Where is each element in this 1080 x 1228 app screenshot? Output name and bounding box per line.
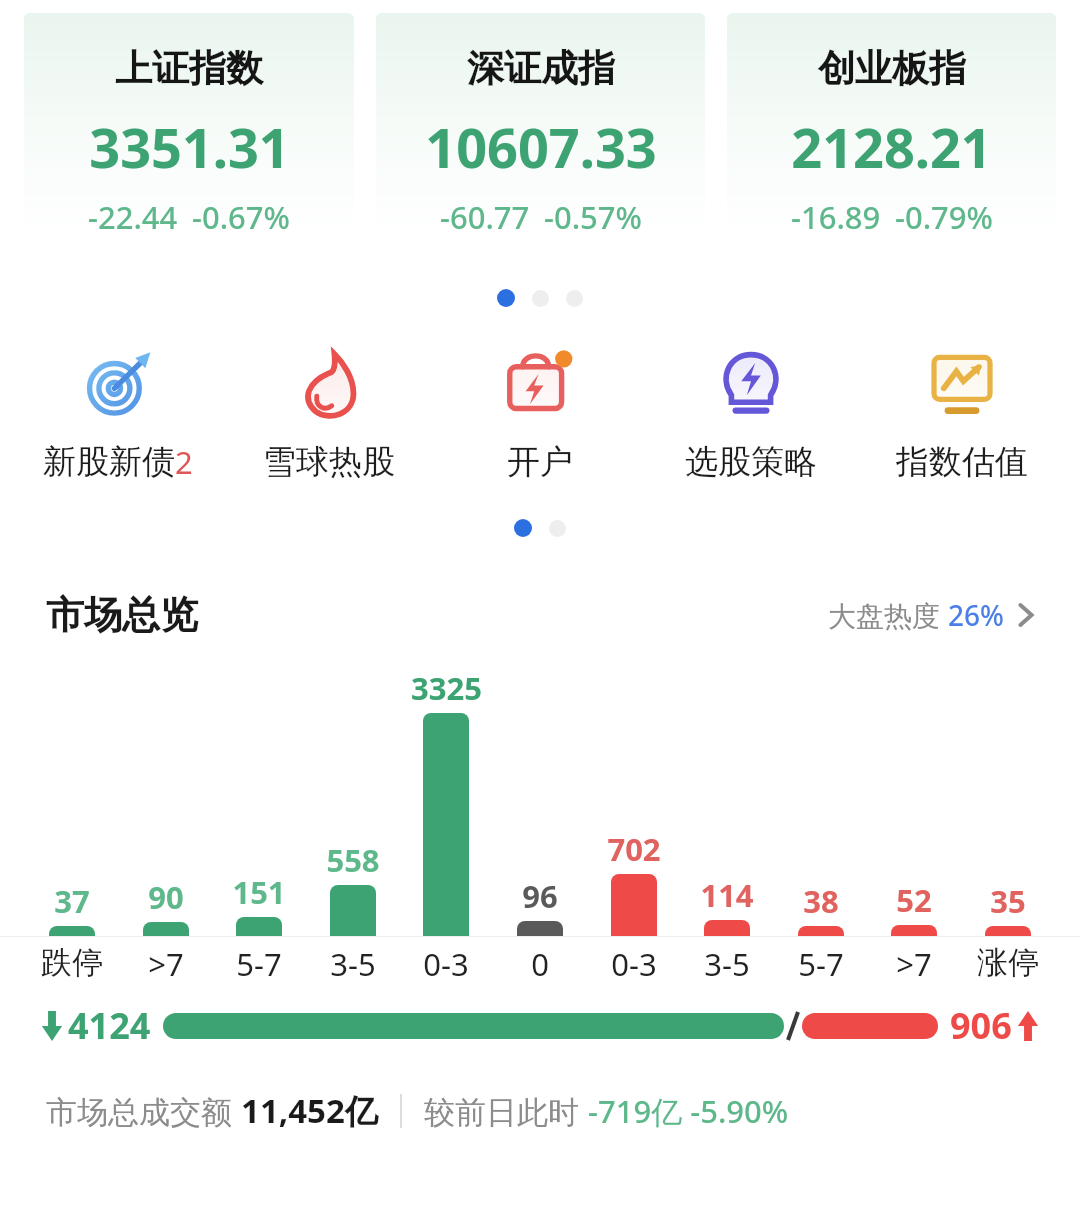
staticText: 52 (896, 879, 932, 921)
button[interactable]: 大盘热度 (828, 596, 1034, 634)
button[interactable]: 指数估值 (864, 341, 1060, 483)
button[interactable]: 3325 (404, 667, 488, 937)
staticText: 跌停 (41, 943, 103, 982)
other: 开户 (504, 348, 576, 420)
button[interactable]: 选股策略 (653, 341, 849, 483)
staticText: >7 (896, 943, 932, 985)
staticText: 5-7 (798, 943, 844, 985)
staticText: 市场总成交额 (46, 1090, 241, 1132)
staticText: 3-5 (330, 943, 376, 985)
staticText: 0-3 (611, 943, 657, 985)
staticText: 涨停 (977, 943, 1039, 982)
staticText: 较前日此时 (424, 1090, 588, 1132)
staticText: 906 (950, 1001, 1012, 1050)
staticText: 深证成指 (467, 45, 615, 92)
staticText: 0-3 (423, 943, 469, 985)
staticText: 38 (803, 880, 839, 922)
staticText: 10607.33 (425, 110, 657, 184)
button[interactable]: 雪球热股 (231, 341, 427, 483)
staticText: 35 (990, 880, 1026, 922)
staticText: 指数估值 (896, 441, 1028, 483)
staticText: 3-5 (704, 943, 750, 985)
staticText: 3351.31 (89, 110, 290, 184)
other: 雪球热股 (295, 350, 363, 418)
staticText: 选股策略 (685, 441, 817, 483)
staticText: 大盘热度 (828, 596, 948, 634)
staticText: -16.89 (791, 196, 881, 238)
button[interactable]: 35 (966, 880, 1050, 937)
button[interactable]: 114 (685, 874, 769, 937)
button[interactable]: 新股新债 (20, 341, 216, 483)
button[interactable]: 开户 (442, 341, 638, 483)
staticText: -0.67% (192, 196, 290, 238)
staticText: -0.57% (544, 196, 642, 238)
button[interactable]: 4124 (40, 1001, 1040, 1050)
button[interactable]: 37 (30, 880, 114, 937)
staticText: 96 (522, 875, 558, 917)
staticText: -22.44 (88, 196, 178, 238)
button[interactable]: 上证指数 (24, 13, 354, 240)
staticText: 新股新债 (43, 441, 175, 483)
staticText: 114 (700, 874, 754, 916)
staticText: 2128.21 (791, 110, 992, 184)
staticText: 开户 (507, 441, 573, 483)
button[interactable]: 52 (872, 879, 956, 937)
staticText: 5-7 (236, 943, 282, 985)
button[interactable]: 38 (779, 880, 863, 937)
staticText: -0.79% (895, 196, 993, 238)
staticText: 0 (531, 943, 549, 985)
staticText: 26% (948, 596, 1004, 634)
staticText: >7 (148, 943, 184, 985)
staticText: 702 (607, 828, 661, 870)
staticText: 3325 (411, 667, 482, 709)
staticText: 558 (326, 839, 380, 881)
button[interactable]: 创业板指 (727, 13, 1056, 240)
staticText: 创业板指 (818, 45, 966, 92)
staticText: 市场总览 (46, 591, 198, 639)
staticText: 37 (54, 880, 90, 922)
staticText: 90 (148, 876, 184, 918)
button[interactable]: 深证成指 (376, 13, 705, 240)
staticText: 11,452亿 (241, 1088, 378, 1133)
other: 指数估值 (927, 349, 997, 419)
other: 选股策略 (716, 349, 786, 419)
button[interactable]: 96 (498, 875, 582, 937)
staticText: 雪球热股 (263, 441, 395, 483)
staticText: 4124 (68, 1001, 151, 1050)
staticText: -60.77 (440, 196, 530, 238)
staticText: 151 (232, 871, 286, 913)
button[interactable]: 702 (592, 828, 676, 937)
button[interactable]: 90 (124, 876, 208, 937)
button[interactable]: 151 (217, 871, 301, 937)
button[interactable]: 558 (311, 839, 395, 937)
staticText: 上证指数 (115, 45, 263, 92)
staticText: -719亿 -5.90% (588, 1090, 789, 1132)
other: 新股新债 (82, 348, 154, 420)
staticText: 2 (175, 441, 193, 483)
